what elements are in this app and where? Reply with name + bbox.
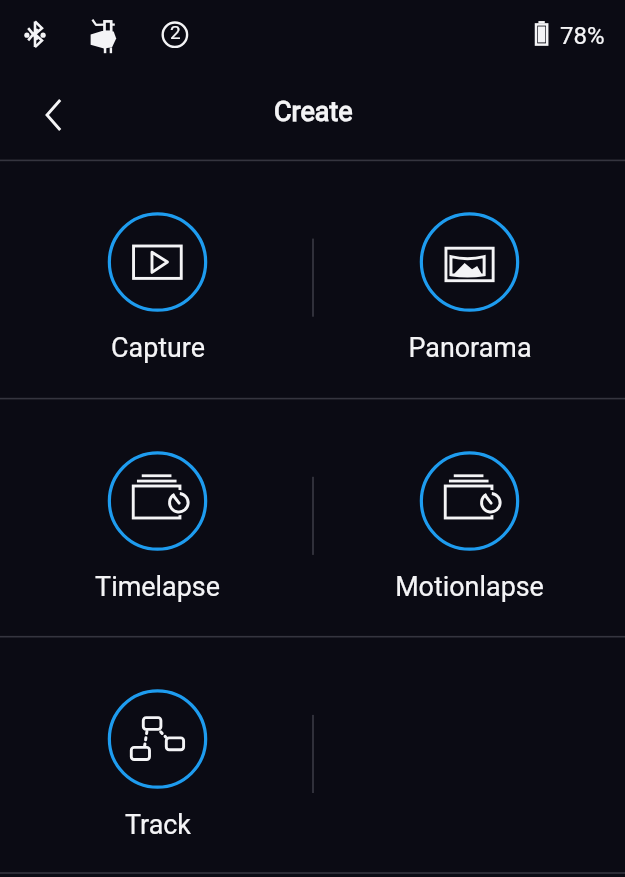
staticText: Track <box>125 809 191 841</box>
button[interactable]: Capture <box>1 160 314 397</box>
button[interactable]: Track <box>1 637 314 874</box>
staticText: Create <box>274 96 353 128</box>
staticText: Timelapse <box>95 571 220 603</box>
button[interactable]: Back <box>26 87 82 143</box>
staticText: Capture <box>111 332 205 364</box>
staticText: 2 <box>170 21 181 43</box>
staticText: Panorama <box>408 332 532 364</box>
staticText: 78% <box>560 22 605 50</box>
button[interactable]: Timelapse <box>1 399 314 636</box>
button[interactable]: Panorama <box>313 160 625 397</box>
button[interactable]: Motionlapse <box>313 399 625 636</box>
staticText: Motionlapse <box>395 571 544 603</box>
